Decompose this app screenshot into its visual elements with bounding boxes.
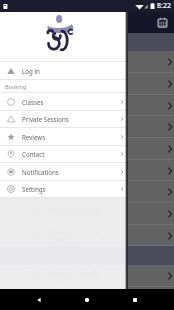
staticText: 11:00: [26, 97, 46, 107]
button[interactable]: 5:00: [0, 181, 174, 203]
button[interactable]: Contact: [0, 146, 128, 162]
staticText: Pilates CrossFit: [52, 76, 107, 86]
staticText: 2:00: [26, 141, 41, 151]
button[interactable]: Settings: [0, 181, 128, 197]
button[interactable]: Calendar: [155, 15, 170, 30]
button[interactable]: 11:00: [0, 95, 174, 116]
staticText: Classes: [22, 98, 44, 106]
button[interactable]: Recents: [126, 291, 144, 309]
staticText: PM: [30, 151, 38, 158]
staticText: Pilates CrossFit: [47, 162, 102, 172]
button[interactable]: Home: [78, 291, 96, 309]
button[interactable]: 8:00: [0, 225, 174, 246]
staticText: Private Sessions: [22, 115, 69, 123]
staticText: AM: [32, 86, 40, 93]
staticText: Yolanda Olson: [52, 107, 86, 114]
button[interactable]: 12:00: [0, 116, 174, 138]
button[interactable]: 2:00: [0, 138, 174, 160]
staticText: AM: [30, 64, 38, 71]
staticText: PM: [32, 129, 40, 136]
button[interactable]: 7:00: [0, 203, 174, 225]
button[interactable]: Notifications: [0, 163, 128, 180]
staticText: Notifications: [22, 168, 59, 176]
staticText: Pilates CrossFit: [52, 119, 107, 129]
staticText: 4:00: [26, 162, 41, 172]
staticText: PM: [30, 172, 38, 179]
staticText: 12:00: [26, 119, 46, 129]
staticText: Contact: [22, 150, 45, 158]
button[interactable]: Log in: [0, 62, 128, 79]
staticText: 5:00: [26, 184, 41, 194]
staticText: Pilates CrossFit: [47, 141, 102, 151]
staticText: 8:22: [157, 1, 171, 11]
staticText: Booking: [5, 83, 27, 90]
staticText: PM: [30, 194, 38, 201]
staticText: Yolanda Olson: [47, 172, 81, 179]
staticText: Yolanda Olson: [47, 194, 81, 201]
button[interactable]: Private Sessions: [0, 111, 128, 127]
staticText: Reviews: [22, 133, 46, 141]
staticText: Pilates CrossFit: [47, 54, 102, 64]
staticText: 9:00: [26, 54, 41, 64]
staticText: AM: [32, 107, 40, 114]
staticText: Yolanda Olson: [52, 86, 86, 93]
button[interactable]: Classes: [0, 93, 128, 110]
button[interactable]: Reviews: [0, 128, 128, 145]
button[interactable]: 10:00: [0, 73, 174, 95]
button[interactable]: 4:00: [0, 160, 174, 181]
staticText: Settings: [22, 185, 46, 193]
staticText: 10:00: [26, 76, 46, 86]
staticText: Log in: [22, 67, 40, 75]
button[interactable]: Back: [30, 291, 48, 309]
button[interactable]: 9:00: [0, 51, 174, 73]
button[interactable]: 8:00: [0, 265, 174, 287]
